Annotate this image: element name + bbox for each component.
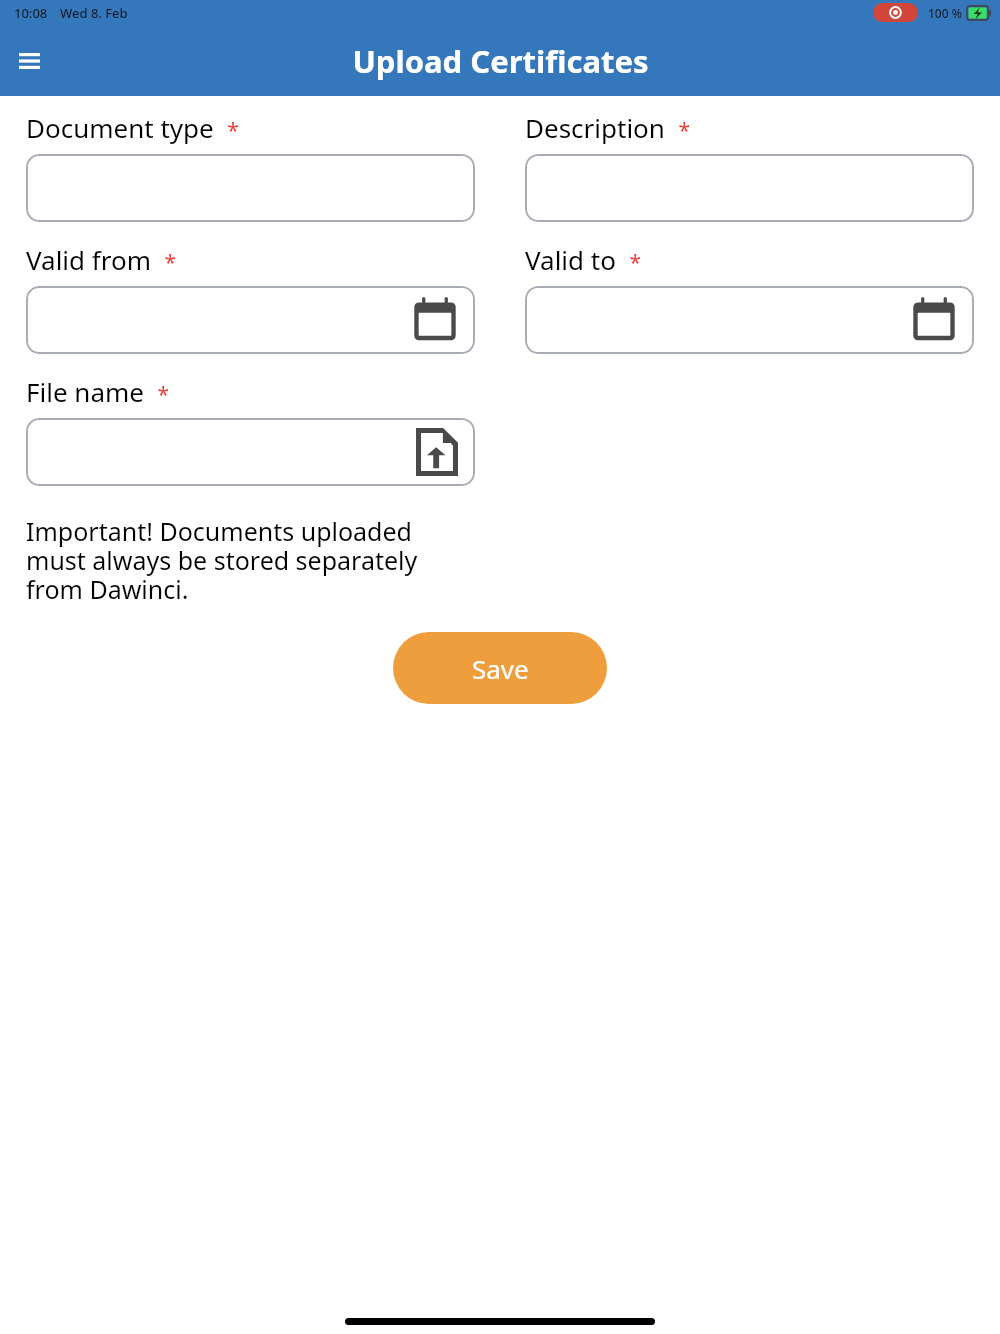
staticText: 100 %: [928, 5, 962, 21]
staticText: Wed 8. Feb: [60, 4, 128, 22]
button[interactable]: Pick date: [525, 286, 974, 354]
button[interactable]: [525, 154, 974, 222]
staticText: File name *: [26, 374, 170, 409]
staticText: Important! Documents uploaded must alway…: [26, 514, 451, 606]
staticText: Save: [472, 651, 529, 686]
staticText: 10:08: [14, 4, 48, 22]
staticText: Valid from *: [26, 242, 177, 277]
button[interactable]: Choose file: [26, 418, 475, 486]
button[interactable]: Pick date: [26, 286, 475, 354]
button[interactable]: Save: [393, 632, 607, 704]
staticText: Document type *: [26, 110, 239, 145]
button[interactable]: Open navigation menu: [3, 35, 55, 87]
staticText: Upload Certificates: [352, 40, 649, 82]
staticText: Description *: [525, 110, 690, 145]
staticText: Valid to *: [525, 242, 642, 277]
button[interactable]: [26, 154, 475, 222]
